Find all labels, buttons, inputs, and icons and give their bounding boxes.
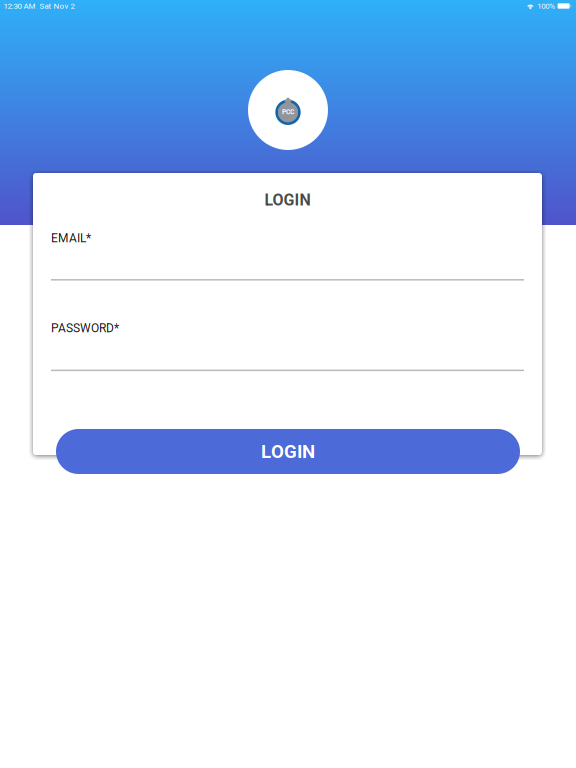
staticText: LOGIN — [261, 441, 315, 462]
staticText: 100% — [537, 1, 555, 11]
staticText: PCC — [282, 108, 294, 116]
staticText: EMAIL* — [51, 231, 91, 245]
staticText: 12:30 AM — [3, 1, 35, 11]
button[interactable]: PASSWORD* — [51, 321, 524, 371]
staticText: PASSWORD* — [51, 321, 119, 335]
button[interactable]: EMAIL* — [51, 231, 524, 281]
staticText: LOGIN — [264, 191, 310, 209]
staticText: Sat Nov 2 — [39, 1, 74, 11]
button[interactable]: LOGIN — [56, 429, 520, 474]
